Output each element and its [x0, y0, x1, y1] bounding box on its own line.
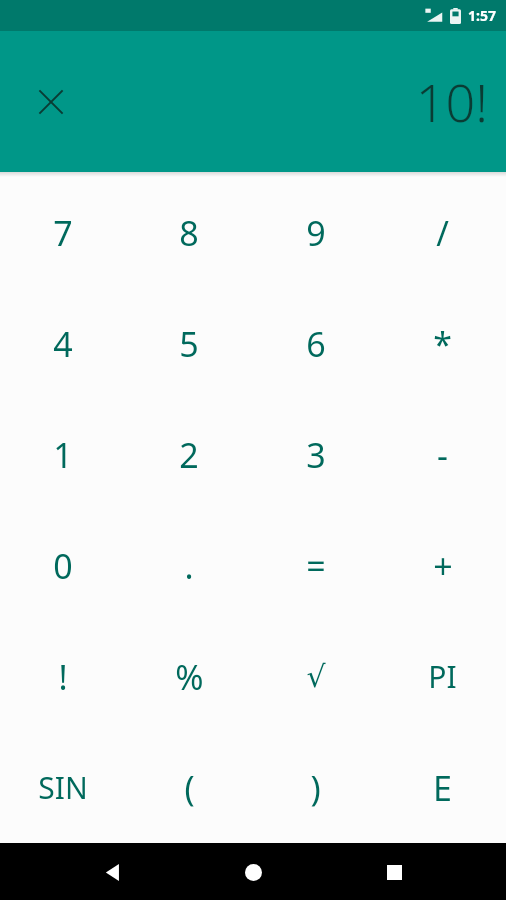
staticText: 6	[306, 321, 326, 367]
button[interactable]: Clear	[23, 74, 79, 130]
staticText: 9	[306, 210, 326, 256]
staticText: PI	[428, 656, 457, 697]
staticText: *	[433, 321, 452, 367]
staticText: 0	[53, 543, 73, 589]
staticText: SIN	[38, 767, 88, 808]
staticText: 2	[179, 432, 199, 478]
button[interactable]: 6	[252, 288, 379, 399]
button[interactable]: )	[252, 732, 379, 843]
staticText: 3	[306, 432, 326, 478]
button[interactable]: 7	[0, 177, 126, 288]
staticText: 7	[53, 210, 73, 256]
staticText: !	[58, 654, 68, 700]
button[interactable]: -	[379, 399, 506, 510]
staticText: E	[433, 765, 452, 811]
button[interactable]: Home	[225, 844, 281, 900]
staticText: )	[310, 765, 321, 811]
button[interactable]: Back	[85, 844, 141, 900]
button[interactable]: √	[252, 621, 379, 732]
staticText: +	[433, 543, 453, 589]
button[interactable]: 0	[0, 510, 126, 621]
button[interactable]: 8	[126, 177, 252, 288]
button[interactable]: %	[126, 621, 252, 732]
button[interactable]: 5	[126, 288, 252, 399]
button[interactable]: =	[252, 510, 379, 621]
button[interactable]: 3	[252, 399, 379, 510]
button[interactable]: *	[379, 288, 506, 399]
button[interactable]: +	[379, 510, 506, 621]
button[interactable]: Recents	[366, 844, 422, 900]
button[interactable]: E	[379, 732, 506, 843]
staticText: -	[437, 432, 448, 478]
staticText: .	[184, 543, 194, 589]
button[interactable]: 9	[252, 177, 379, 288]
button[interactable]: PI	[379, 621, 506, 732]
button[interactable]: !	[0, 621, 126, 732]
staticText: %	[175, 654, 204, 700]
staticText: 8	[179, 210, 199, 256]
staticText: √	[306, 659, 326, 694]
button[interactable]: (	[126, 732, 252, 843]
staticText: (	[184, 765, 195, 811]
button[interactable]: .	[126, 510, 252, 621]
button[interactable]: 2	[126, 399, 252, 510]
staticText: /	[436, 210, 449, 256]
staticText: 10!	[415, 66, 488, 137]
staticText: 1:57	[468, 6, 496, 25]
staticText: 4	[53, 321, 73, 367]
button[interactable]: 1	[0, 399, 126, 510]
button[interactable]: SIN	[0, 732, 126, 843]
button[interactable]: /	[379, 177, 506, 288]
staticText: =	[306, 543, 326, 589]
staticText: 1	[53, 432, 73, 478]
button[interactable]: 4	[0, 288, 126, 399]
staticText: 5	[179, 321, 199, 367]
